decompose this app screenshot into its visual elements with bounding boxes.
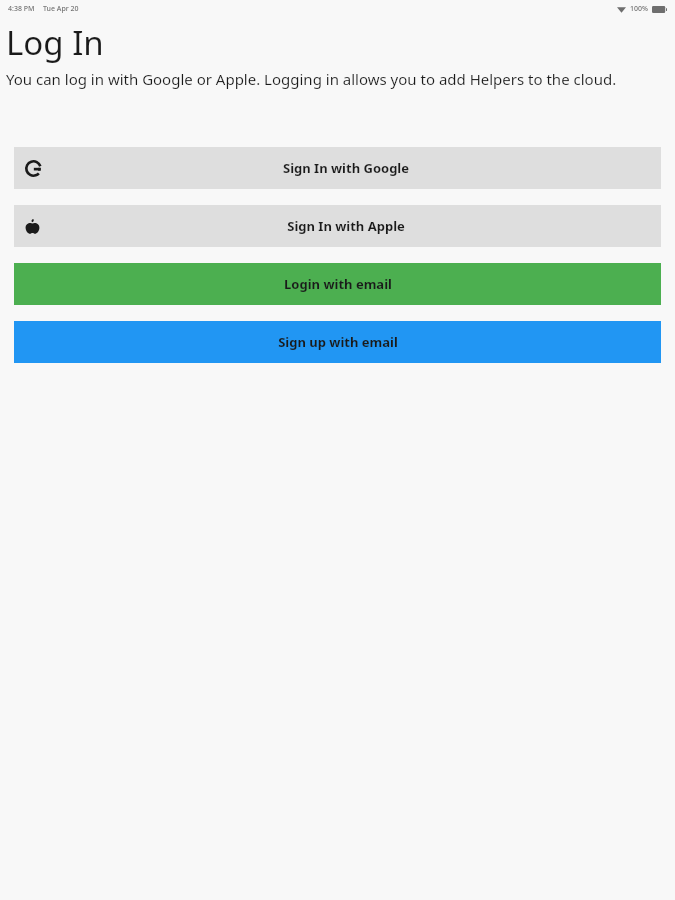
staticText: You can log in with Google or Apple. Log… [6,69,667,89]
staticText: 100% [630,4,648,14]
staticText: Sign In with Google [283,159,409,177]
button[interactable]: Login with email [14,263,661,305]
other: Apple logo [25,219,40,234]
staticText: Login with email [284,275,392,293]
staticText: Sign up with email [278,333,398,351]
staticText: 4:38 PM [8,4,35,14]
other: Google logo [25,160,42,177]
staticText: Log In [6,20,104,65]
button[interactable]: Apple logo [14,205,661,247]
button[interactable]: Sign up with email [14,321,661,363]
staticText: Sign In with Apple [287,217,405,235]
button[interactable]: Google logo [14,147,661,189]
staticText: Tue Apr 20 [43,4,79,14]
